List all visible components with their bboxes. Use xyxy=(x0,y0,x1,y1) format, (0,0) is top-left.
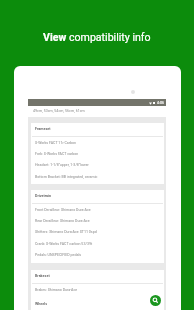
staticText: View xyxy=(43,31,69,43)
staticText: 4:06 xyxy=(157,101,164,105)
staticText: Pedals: UNSPECIFIED pedals xyxy=(35,253,82,257)
button[interactable]: Pedals: UNSPECIFIED pedals xyxy=(31,249,164,260)
button[interactable]: Rear Derailleur: Shimano Dura-Ace xyxy=(31,215,164,226)
staticText: Drivetrain xyxy=(35,194,52,198)
button[interactable]: Headset: 1-1/8"upper, 1-3/8"lower xyxy=(31,159,164,170)
button[interactable]: Brakes: Shimano Dura-Ace xyxy=(31,284,164,295)
staticText: Rear Derailleur: Shimano Dura-Ace xyxy=(35,219,90,223)
button[interactable]: Bottom Bracket: BB integrated, ceramic xyxy=(31,171,164,182)
staticText: Bottom Bracket: BB integrated, ceramic xyxy=(35,175,98,179)
staticText: Headset: 1-1/8"upper, 1-3/8"lower xyxy=(35,163,89,167)
staticText: Wheels xyxy=(35,302,48,306)
staticText: S-Works FACT 11r Carbon xyxy=(35,141,77,145)
staticText: Crank: S-Works FACT carbon 53/39t xyxy=(35,242,93,246)
button[interactable]: Shifters: Shimano Dura-Ace ST11 0spd xyxy=(31,226,164,237)
button[interactable]: Fork: S-Works FACT carbon xyxy=(31,148,164,159)
staticText: Fork: S-Works FACT carbon xyxy=(35,152,79,156)
button[interactable]: S-Works FACT 11r Carbon xyxy=(31,137,164,148)
button[interactable]: Crank: S-Works FACT carbon 53/39t xyxy=(31,238,164,249)
staticText: compatibility info xyxy=(69,31,151,43)
staticText: Brakes: Shimano Dura-Ace xyxy=(35,288,78,292)
button[interactable]: Front Derailleur: Shimano Dura-Ace xyxy=(31,204,164,215)
staticText: 49cm, 53cm, 54cm, 56cm, 61cm xyxy=(33,109,85,113)
staticText: Front Derailleur: Shimano Dura-Ace xyxy=(35,208,91,212)
staticText: Brakeset xyxy=(35,274,50,278)
staticText: Frameset xyxy=(35,127,51,131)
button[interactable]: Search xyxy=(150,295,161,306)
staticText: Shifters: Shimano Dura-Ace ST11 0spd xyxy=(35,230,97,234)
